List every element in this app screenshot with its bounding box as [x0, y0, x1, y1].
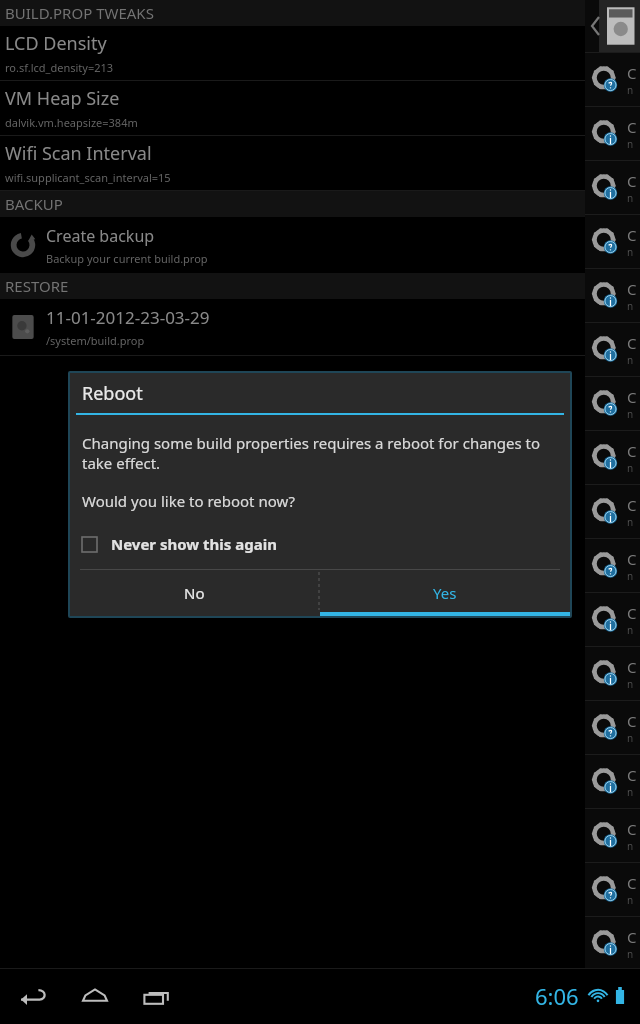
- button[interactable]: C: [585, 701, 640, 754]
- staticText: BACKUP: [5, 194, 63, 214]
- button[interactable]: C: [585, 215, 640, 268]
- button[interactable]: Never show this again: [82, 529, 558, 559]
- staticText: wifi.supplicant_scan_interval=15: [5, 170, 171, 185]
- staticText: Create backup: [46, 225, 155, 247]
- staticText: /system/build.prop: [46, 333, 145, 348]
- staticText: Reboot: [82, 381, 143, 406]
- button[interactable]: Back: [18, 981, 48, 1011]
- button[interactable]: C: [585, 377, 640, 430]
- button[interactable]: C: [585, 323, 640, 376]
- button[interactable]: Wifi Scan Interval: [0, 136, 585, 190]
- staticText: n: [627, 623, 634, 637]
- button[interactable]: C: [585, 593, 640, 646]
- staticText: Changing some build properties requires …: [82, 433, 558, 473]
- staticText: n: [627, 137, 634, 151]
- button[interactable]: Home: [80, 981, 110, 1011]
- staticText: n: [627, 83, 634, 97]
- staticText: n: [627, 947, 634, 961]
- staticText: n: [627, 407, 634, 421]
- staticText: 6:06: [535, 981, 579, 1011]
- staticText: n: [627, 461, 634, 475]
- button[interactable]: 11-01-2012-23-03-29: [0, 299, 585, 355]
- staticText: n: [627, 353, 634, 367]
- staticText: n: [627, 299, 634, 313]
- staticText: C: [627, 117, 637, 137]
- staticText: C: [627, 549, 637, 569]
- button[interactable]: C: [585, 53, 640, 106]
- staticText: C: [627, 387, 637, 407]
- staticText: n: [627, 677, 634, 691]
- button[interactable]: C: [585, 431, 640, 484]
- button[interactable]: LCD Density: [0, 26, 585, 80]
- staticText: Never show this again: [111, 534, 277, 554]
- staticText: LCD Density: [5, 31, 107, 56]
- staticText: n: [627, 245, 634, 259]
- staticText: n: [627, 191, 634, 205]
- staticText: RESTORE: [5, 276, 69, 296]
- staticText: C: [627, 333, 637, 353]
- staticText: C: [627, 279, 637, 299]
- button[interactable]: Recents: [142, 981, 172, 1011]
- staticText: n: [627, 893, 634, 907]
- button[interactable]: VM Heap Size: [0, 81, 585, 135]
- staticText: n: [627, 785, 634, 799]
- button[interactable]: C: [585, 647, 640, 700]
- staticText: n: [627, 569, 634, 583]
- staticText: C: [627, 657, 637, 677]
- button[interactable]: C: [585, 755, 640, 808]
- staticText: Yes: [433, 583, 457, 603]
- staticText: C: [627, 225, 637, 245]
- staticText: VM Heap Size: [5, 86, 120, 111]
- staticText: C: [627, 819, 637, 839]
- button[interactable]: C: [585, 161, 640, 214]
- button[interactable]: C: [585, 107, 640, 160]
- staticText: n: [627, 731, 634, 745]
- staticText: C: [627, 765, 637, 785]
- staticText: C: [627, 603, 637, 623]
- staticText: C: [627, 63, 637, 83]
- button[interactable]: C: [585, 917, 640, 970]
- staticText: C: [627, 495, 637, 515]
- staticText: Backup your current build.prop: [46, 251, 208, 266]
- staticText: ro.sf.lcd_density=213: [5, 60, 114, 75]
- staticText: C: [627, 441, 637, 461]
- button[interactable]: C: [585, 485, 640, 538]
- staticText: 11-01-2012-23-03-29: [46, 306, 210, 329]
- staticText: No: [184, 583, 205, 603]
- staticText: BUILD.PROP TWEAKS: [5, 3, 154, 23]
- button[interactable]: Back: [585, 0, 640, 52]
- button[interactable]: C: [585, 539, 640, 592]
- staticText: C: [627, 927, 637, 947]
- staticText: n: [627, 515, 634, 529]
- button[interactable]: C: [585, 269, 640, 322]
- staticText: C: [627, 171, 637, 191]
- staticText: n: [627, 839, 634, 853]
- button[interactable]: C: [585, 863, 640, 916]
- staticText: Wifi Scan Interval: [5, 141, 152, 166]
- button[interactable]: No: [70, 570, 319, 616]
- staticText: dalvik.vm.heapsize=384m: [5, 115, 138, 130]
- staticText: Would you like to reboot now?: [82, 491, 296, 511]
- staticText: C: [627, 711, 637, 731]
- button[interactable]: Create backup: [0, 217, 585, 273]
- button[interactable]: Yes: [320, 570, 570, 616]
- staticText: C: [627, 873, 637, 893]
- button[interactable]: C: [585, 809, 640, 862]
